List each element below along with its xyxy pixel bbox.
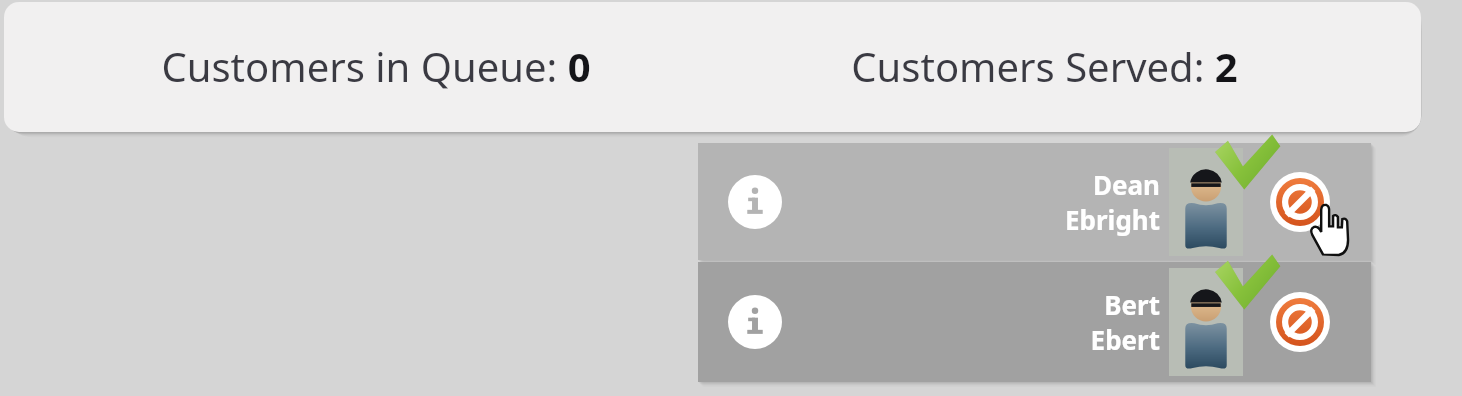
staticText: Customers Served: 2 (851, 39, 1238, 93)
button[interactable]: Information (698, 262, 1371, 382)
staticText: Ebright (1064, 202, 1160, 237)
button[interactable]: Information (728, 175, 782, 229)
button[interactable]: Remove customer (1270, 172, 1330, 232)
staticText: Ebert (1090, 322, 1160, 357)
button[interactable]: Remove customer (1270, 292, 1330, 352)
button[interactable]: Information (698, 143, 1371, 260)
button[interactable]: Information (728, 295, 782, 349)
button[interactable]: Customer photo (1169, 268, 1243, 376)
staticText: Bert (1104, 287, 1160, 322)
button[interactable]: Customer photo (1169, 148, 1243, 256)
staticText: Customers in Queue: 0 (161, 39, 591, 93)
staticText: Dean (1092, 167, 1160, 202)
